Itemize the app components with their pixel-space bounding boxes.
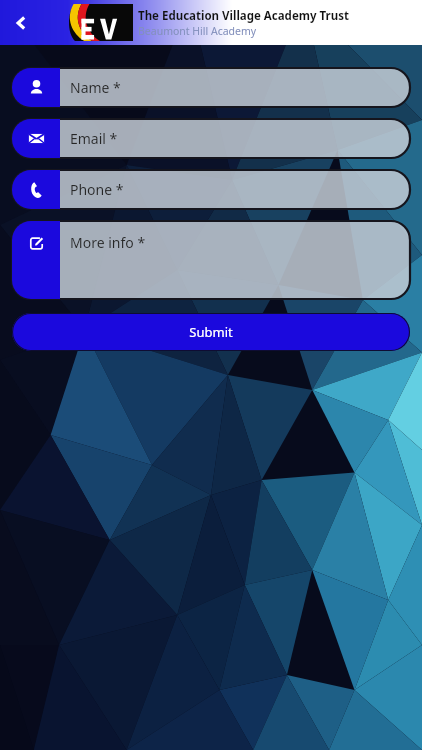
staticText: Phone *	[70, 180, 124, 199]
button[interactable]: Name	[12, 68, 410, 107]
button[interactable]: Email	[12, 119, 410, 158]
button[interactable]: More info	[12, 221, 410, 299]
other: Email	[12, 119, 60, 158]
staticText: The Education Village Academy Trust	[138, 8, 349, 24]
staticText: Submit	[189, 323, 233, 341]
staticText: Name *	[70, 78, 121, 97]
other: Phone	[12, 170, 60, 209]
staticText: Email *	[70, 129, 118, 148]
other: Name	[12, 68, 60, 107]
button[interactable]: Submit	[12, 313, 410, 351]
button[interactable]: Phone	[12, 170, 410, 209]
staticText: Beaumont Hill Academy	[138, 24, 257, 38]
staticText: More info *	[70, 233, 146, 252]
other: More info	[12, 221, 60, 299]
button[interactable]: Back	[6, 8, 36, 38]
